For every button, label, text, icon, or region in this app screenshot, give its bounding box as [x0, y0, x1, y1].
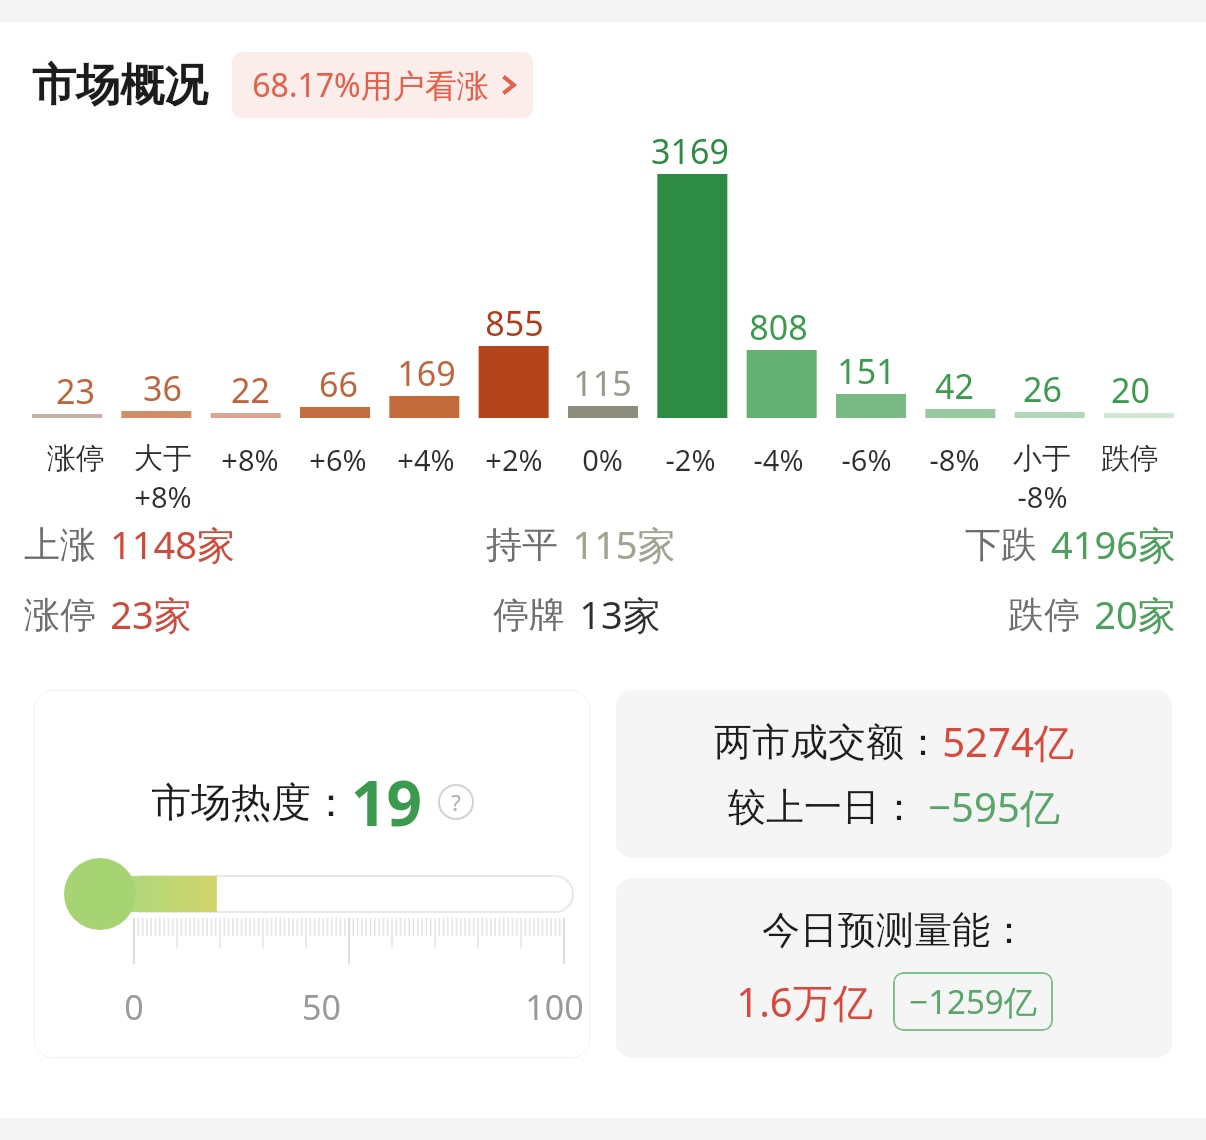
staticText: 23	[56, 368, 95, 414]
staticText: 36	[143, 365, 182, 411]
staticText: 下跌	[965, 522, 1037, 567]
staticText: 涨停	[47, 440, 105, 477]
staticText: 5274亿	[942, 714, 1074, 769]
staticText: 大于	[134, 440, 192, 477]
staticText: 4196家	[1051, 518, 1176, 570]
staticText: 1.6万亿	[736, 974, 873, 1029]
staticText: 855	[485, 300, 544, 346]
staticText: 23家	[110, 588, 192, 640]
staticText: 上涨	[24, 522, 96, 567]
staticText: 两市成交额：	[714, 718, 942, 766]
staticText: -8%	[929, 440, 980, 479]
staticText: -8%	[1017, 477, 1068, 516]
staticText: 66	[319, 361, 358, 407]
staticText: 今日预测量能：	[762, 906, 1028, 954]
staticText: 13家	[579, 588, 661, 640]
staticText: 42	[935, 363, 974, 409]
staticText: 停牌	[493, 592, 565, 637]
staticText: 3169	[651, 128, 729, 174]
staticText: 151	[837, 348, 896, 394]
button[interactable]: 68.17%用户看涨	[232, 52, 533, 118]
staticText: −1259亿	[909, 979, 1037, 1024]
staticText: -2%	[665, 440, 716, 479]
staticText: 50	[302, 984, 341, 1030]
staticText: 小于	[1013, 440, 1071, 477]
staticText: -4%	[753, 440, 804, 479]
staticText: 跌停	[1008, 592, 1080, 637]
staticText: 0%	[582, 440, 623, 479]
button[interactable]: 停牌	[493, 588, 661, 640]
staticText: 808	[749, 304, 808, 350]
button[interactable]: 热度说明	[438, 784, 474, 820]
staticText: 跌停	[1101, 440, 1159, 477]
staticText: 20	[1111, 367, 1150, 413]
staticText: 较上一日：	[728, 783, 918, 831]
staticText: +6%	[309, 440, 367, 479]
staticText: 100	[525, 984, 584, 1030]
staticText: 20家	[1094, 588, 1176, 640]
button[interactable]: 两市成交额：	[616, 690, 1172, 858]
staticText: 115	[573, 360, 632, 406]
staticText: -6%	[841, 440, 892, 479]
staticText: 68.17%用户看涨	[252, 63, 489, 107]
staticText: 1148家	[110, 518, 235, 570]
staticText: −595亿	[928, 779, 1060, 834]
staticText: 115家	[572, 518, 676, 570]
button[interactable]: 持平	[486, 518, 676, 570]
button[interactable]: 涨停	[24, 588, 192, 640]
button[interactable]: 市场热度：	[34, 690, 590, 1058]
staticText: 涨停	[24, 592, 96, 637]
staticText: 169	[397, 350, 456, 396]
staticText: 0	[124, 984, 144, 1030]
staticText: +4%	[397, 440, 455, 479]
staticText: 市场热度：	[151, 777, 351, 827]
button[interactable]: 跌停	[1008, 588, 1176, 640]
button[interactable]: 上涨	[24, 518, 235, 570]
staticText: 26	[1023, 366, 1062, 412]
staticText: 19	[351, 760, 422, 844]
staticText: +8%	[134, 477, 192, 516]
staticText: 市场概况	[32, 58, 208, 113]
button[interactable]: 下跌	[965, 518, 1176, 570]
staticText: ?	[451, 787, 461, 817]
staticText: +2%	[485, 440, 543, 479]
button[interactable]: 今日预测量能：	[616, 878, 1172, 1058]
staticText: +8%	[221, 440, 279, 479]
staticText: 持平	[486, 522, 558, 567]
staticText: 22	[231, 367, 270, 413]
